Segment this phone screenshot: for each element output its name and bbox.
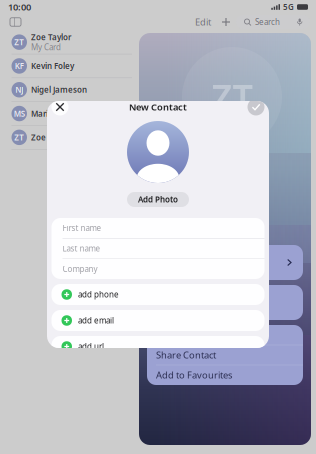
staticText: ZT [211,73,252,121]
staticText: Send Message [156,329,217,341]
staticText: add phone [78,289,119,300]
staticText: Search [255,17,280,27]
staticText: Maria Sanchez [31,108,87,119]
staticText: add url [78,341,104,352]
button[interactable]: Add Contact [216,15,236,29]
staticText: Add to Favourites [156,369,232,381]
staticText: Edit [195,16,211,28]
staticText: Kevin Foley [31,61,74,71]
button[interactable]: MS [0,102,132,126]
staticText: 10:00 [8,1,31,13]
staticText: Share Contact [156,349,216,361]
staticText: add email [78,315,114,326]
button[interactable]: Send Message [147,325,303,345]
staticText: Zoe Taylor [31,32,71,42]
staticText: ZT [14,37,24,47]
staticText: New Contact [129,101,187,113]
button[interactable]: add email [51,310,264,331]
button[interactable]: Add to Favourites [147,365,303,385]
staticText: Company [62,264,97,274]
staticText: My Card [31,42,61,52]
staticText: 5G [283,2,294,12]
staticText: First name [62,223,101,233]
button[interactable]: add url [51,336,264,357]
button[interactable]: NJ [0,78,132,102]
staticText: MS [14,108,25,119]
staticText: NJ [15,84,23,95]
button[interactable]: Toggle Sidebar [6,15,25,29]
staticText: Nigel Jameson [31,84,87,95]
staticText: Add Photo [138,194,178,205]
staticText: Zoe Taylor [31,132,71,143]
staticText: KF [15,61,24,71]
button[interactable]: Add Photo [127,192,189,207]
button[interactable]: ZT [0,126,132,149]
staticText: Last name [62,243,100,254]
button[interactable]: KF [0,54,132,78]
button[interactable]: add phone [51,284,264,305]
button[interactable]: ZT [0,30,132,54]
button[interactable]: Done [247,98,264,115]
button[interactable]: Search [236,15,310,29]
staticText: ZT [14,132,24,143]
button[interactable]: Edit [190,13,216,31]
button[interactable]: Cancel [51,98,68,115]
button[interactable]: Share Contact [147,345,303,365]
